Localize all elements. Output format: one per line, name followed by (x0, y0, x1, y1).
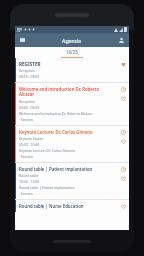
staticText: REGISTER (19, 61, 41, 67)
button[interactable]: Favourite (120, 95, 127, 102)
button[interactable]: Keynote Lecture: Dr. Carlos Gimeno (15, 126, 129, 162)
staticText: · Session (19, 117, 33, 122)
staticText: 09:30 - 10:40 (19, 142, 40, 147)
button[interactable]: Round table | Patient implantation (15, 163, 129, 199)
button[interactable]: REGISTER (15, 58, 129, 82)
staticText: · Session (19, 191, 33, 196)
staticText: Round table | Patient implantation (19, 166, 93, 172)
button[interactable]: Round table | Nurse Education (15, 200, 129, 212)
staticText: Welcome and introduction Dr. Roberto Alc… (19, 86, 100, 98)
staticText: Round table | Nurse Education (19, 203, 84, 209)
button[interactable]: Remind me (120, 129, 127, 136)
staticText: 09:00 - 09:30 (19, 105, 40, 110)
staticText: Reception (19, 99, 35, 104)
staticText: Keynote Lecture: Dr. Carlos Gimeno (19, 148, 76, 153)
staticText: 16/25 (66, 49, 78, 55)
staticText: Keynote Sesion (19, 136, 44, 141)
staticText: Welcome and introduction Dr. Roberto Alc… (19, 111, 93, 116)
staticText: Round table | Patient implantation (19, 185, 75, 190)
staticText: Keynote Lecture: Dr. Carlos Gimeno (19, 129, 93, 135)
staticText: · Session (19, 154, 33, 159)
staticText: 08:15 - 09:00 (19, 74, 40, 79)
button[interactable]: Favourite (120, 175, 127, 182)
staticText: 10:40 - 12:00 (19, 179, 40, 184)
button[interactable]: Menu (17, 35, 27, 45)
button[interactable]: Remind me (120, 166, 127, 173)
button[interactable]: Welcome and introduction Dr. Roberto Alc… (15, 83, 129, 125)
button[interactable]: Favourite (120, 138, 127, 145)
staticText: Agenda (62, 37, 82, 44)
button[interactable]: Favourite (120, 203, 127, 210)
button[interactable]: Favourite (120, 61, 127, 68)
button[interactable]: Remind me (120, 86, 127, 93)
staticText: Reception (19, 68, 35, 73)
button[interactable]: 16/25 (51, 47, 93, 58)
staticText: Round table (19, 173, 39, 178)
button[interactable]: Account (116, 35, 127, 46)
